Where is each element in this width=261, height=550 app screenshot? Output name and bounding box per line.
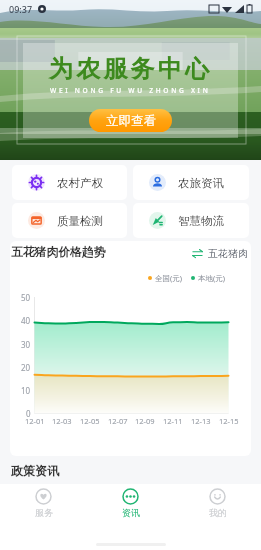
staticText: 五花猪肉价格趋势: [11, 245, 106, 260]
staticText: 12-09: [135, 416, 155, 426]
staticText: 资讯: [122, 507, 140, 518]
staticText: 五花猪肉: [208, 247, 248, 260]
button[interactable]: 服务: [0, 484, 87, 532]
staticText: 10: [21, 385, 31, 396]
staticText: 12-15: [219, 416, 239, 426]
staticText: 12-05: [80, 416, 100, 426]
staticText: 政策资讯: [11, 463, 59, 478]
staticText: 12-07: [108, 416, 128, 426]
staticText: 为农服务中心: [49, 54, 213, 84]
staticText: 质量检测: [57, 214, 103, 228]
staticText: 本地(元): [198, 273, 225, 283]
staticText: 12-13: [191, 416, 211, 426]
button[interactable]: 我的: [174, 484, 261, 532]
staticText: WEI NONG FU WU ZHONG XIN: [50, 86, 211, 95]
staticText: 40: [21, 315, 31, 326]
staticText: 智慧物流: [178, 214, 224, 228]
staticText: 12-03: [52, 416, 72, 426]
button[interactable]: 资讯: [87, 484, 174, 532]
staticText: 12-11: [163, 416, 183, 426]
button[interactable]: 农村产权: [12, 165, 127, 200]
staticText: 农旅资讯: [178, 176, 224, 190]
button[interactable]: 五花猪肉: [192, 247, 248, 260]
staticText: 我的: [209, 507, 227, 518]
button[interactable]: 智慧物流: [133, 203, 249, 238]
button[interactable]: 质量检测: [12, 203, 127, 238]
staticText: 立即查看: [106, 113, 156, 129]
staticText: 30: [21, 339, 31, 350]
staticText: 20: [21, 362, 31, 373]
staticText: 09:37: [9, 3, 33, 15]
staticText: 12-01: [25, 416, 45, 426]
staticText: 50: [21, 292, 31, 303]
staticText: 服务: [35, 507, 53, 518]
staticText: 农村产权: [57, 176, 103, 190]
staticText: 全国(元): [155, 273, 182, 283]
staticText: 0: [26, 408, 31, 419]
button[interactable]: 农旅资讯: [133, 165, 249, 200]
button[interactable]: 立即查看: [89, 109, 172, 132]
